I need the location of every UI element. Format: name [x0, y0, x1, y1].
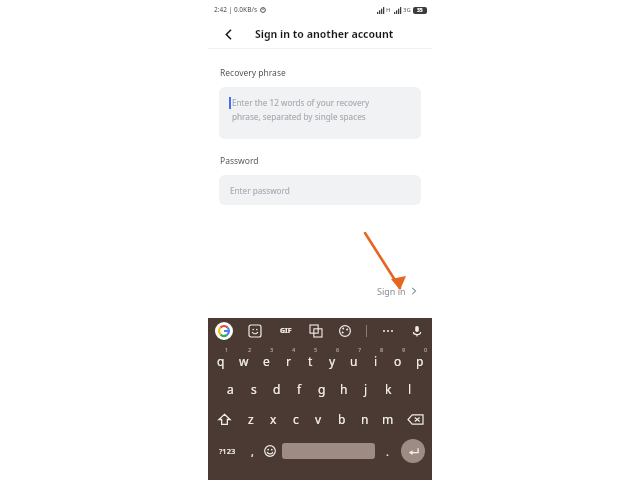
staticText: t: [308, 353, 313, 369]
button[interactable]: Back: [218, 24, 238, 44]
button[interactable]: Backspace: [399, 404, 431, 434]
button[interactable]: Translate: [308, 323, 324, 339]
button[interactable]: s: [242, 374, 265, 404]
button[interactable]: m: [376, 404, 399, 434]
button[interactable]: Enter: [401, 439, 425, 463]
button[interactable]: g: [311, 374, 333, 404]
button[interactable]: More: [380, 323, 396, 339]
staticText: Enter password: [230, 185, 290, 196]
button[interactable]: Space: [282, 443, 375, 459]
button[interactable]: Voice input: [409, 323, 425, 339]
staticText: d: [273, 381, 281, 397]
staticText: n: [361, 411, 369, 427]
button[interactable]: x: [262, 404, 284, 434]
staticText: 8: [380, 346, 384, 353]
staticText: m: [382, 411, 394, 427]
staticText: e: [263, 353, 270, 369]
button[interactable]: Emoji: [260, 434, 279, 468]
staticText: 35: [417, 7, 423, 14]
button[interactable]: 3: [255, 344, 277, 374]
staticText: Sign in: [377, 285, 406, 297]
button[interactable]: 9: [387, 344, 409, 374]
staticText: f: [297, 381, 302, 397]
button[interactable]: b: [330, 404, 353, 434]
button[interactable]: Stickers: [247, 323, 263, 339]
staticText: 3: [270, 346, 274, 353]
button[interactable]: .: [378, 434, 397, 468]
button[interactable]: a: [219, 374, 242, 404]
staticText: 3G: [403, 6, 411, 14]
staticText: Password: [220, 155, 259, 167]
staticText: w: [239, 353, 249, 369]
staticText: 4: [292, 346, 296, 353]
staticText: b: [338, 411, 346, 427]
button[interactable]: Enter the 12 words of your recovery: [219, 87, 421, 139]
button[interactable]: l: [399, 374, 421, 404]
button[interactable]: n: [353, 404, 376, 434]
staticText: k: [385, 381, 392, 397]
staticText: ,: [251, 444, 254, 459]
button[interactable]: k: [377, 374, 399, 404]
staticText: p: [416, 353, 424, 369]
staticText: 7: [358, 346, 362, 353]
button[interactable]: Enter password: [219, 175, 421, 205]
staticText: s: [251, 381, 257, 397]
button[interactable]: GIF: [277, 322, 295, 340]
staticText: 5: [314, 346, 318, 353]
staticText: q: [217, 353, 225, 369]
staticText: GIF: [280, 326, 292, 336]
staticText: 9: [402, 346, 406, 353]
button[interactable]: d: [265, 374, 288, 404]
staticText: v: [315, 411, 322, 427]
staticText: r: [286, 353, 291, 369]
button[interactable]: ,: [244, 434, 260, 468]
button[interactable]: f: [288, 374, 311, 404]
staticText: i: [374, 353, 378, 369]
staticText: 6: [336, 346, 340, 353]
staticText: Sign in to another account: [255, 27, 394, 41]
staticText: H: [386, 6, 391, 14]
staticText: o: [394, 353, 402, 369]
staticText: 2: [248, 346, 252, 353]
button[interactable]: ?123: [211, 434, 244, 468]
staticText: z: [248, 411, 254, 427]
button[interactable]: j: [355, 374, 377, 404]
button[interactable]: Google: [215, 322, 233, 340]
button[interactable]: c: [284, 404, 307, 434]
staticText: phrase, separated by single spaces: [232, 111, 366, 122]
staticText: l: [408, 381, 412, 397]
button[interactable]: 0: [409, 344, 431, 374]
button[interactable]: 2: [232, 344, 255, 374]
staticText: g: [318, 381, 326, 397]
button[interactable]: Sign in: [373, 281, 422, 301]
staticText: x: [270, 411, 277, 427]
staticText: 1: [225, 346, 229, 353]
staticText: .: [386, 444, 389, 459]
button[interactable]: 1: [209, 344, 232, 374]
staticText: Recovery phrase: [220, 67, 286, 79]
staticText: 0: [424, 346, 428, 353]
staticText: ?123: [219, 446, 236, 456]
button[interactable]: v: [307, 404, 330, 434]
button[interactable]: z: [240, 404, 262, 434]
button[interactable]: h: [333, 374, 355, 404]
button[interactable]: 6: [321, 344, 343, 374]
staticText: Enter the 12 words of your recovery: [232, 97, 370, 108]
button[interactable]: 7: [343, 344, 365, 374]
button[interactable]: Shift: [209, 404, 240, 434]
button[interactable]: 8: [365, 344, 387, 374]
staticText: c: [293, 411, 299, 427]
staticText: a: [227, 381, 234, 397]
staticText: y: [329, 353, 336, 369]
button[interactable]: Themes: [337, 323, 353, 339]
button[interactable]: 4: [277, 344, 299, 374]
staticText: j: [364, 381, 368, 397]
staticText: h: [340, 381, 348, 397]
staticText: u: [350, 353, 358, 369]
button[interactable]: 5: [299, 344, 321, 374]
staticText: 2:42 | 0.0KB/s: [214, 5, 258, 14]
